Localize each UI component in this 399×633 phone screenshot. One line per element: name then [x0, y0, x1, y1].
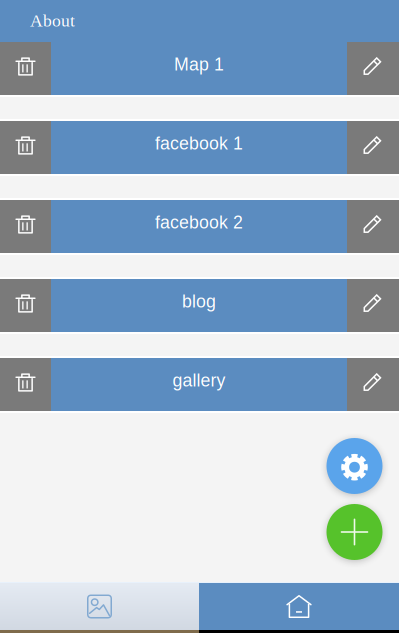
button[interactable]: Gallery	[0, 583, 199, 630]
button[interactable]: Delete blog	[0, 279, 51, 332]
button[interactable]: Edit blog	[347, 279, 399, 332]
button[interactable]: Delete facebook 1	[0, 121, 51, 174]
button[interactable]: Edit Map 1	[347, 42, 399, 95]
button[interactable]: facebook 2	[51, 200, 347, 253]
button[interactable]: blog	[51, 279, 347, 332]
button[interactable]: Edit gallery	[347, 358, 399, 411]
button[interactable]: Home	[199, 583, 399, 630]
button[interactable]: Edit facebook 1	[347, 121, 399, 174]
button[interactable]: facebook 1	[51, 121, 347, 174]
button[interactable]: Delete Map 1	[0, 42, 51, 95]
staticText: blog	[182, 291, 216, 311]
button[interactable]: Add	[326, 504, 382, 560]
staticText: facebook 2	[155, 212, 243, 232]
staticText: Map 1	[174, 54, 224, 74]
button[interactable]: Map 1	[51, 42, 347, 95]
staticText: facebook 1	[155, 133, 243, 153]
staticText: About	[30, 11, 75, 30]
button[interactable]: gallery	[51, 358, 347, 411]
staticText: gallery	[172, 370, 225, 390]
button[interactable]: Delete facebook 2	[0, 200, 51, 253]
button[interactable]: Edit facebook 2	[347, 200, 399, 253]
button[interactable]: Delete gallery	[0, 358, 51, 411]
button[interactable]: Settings	[326, 438, 382, 494]
